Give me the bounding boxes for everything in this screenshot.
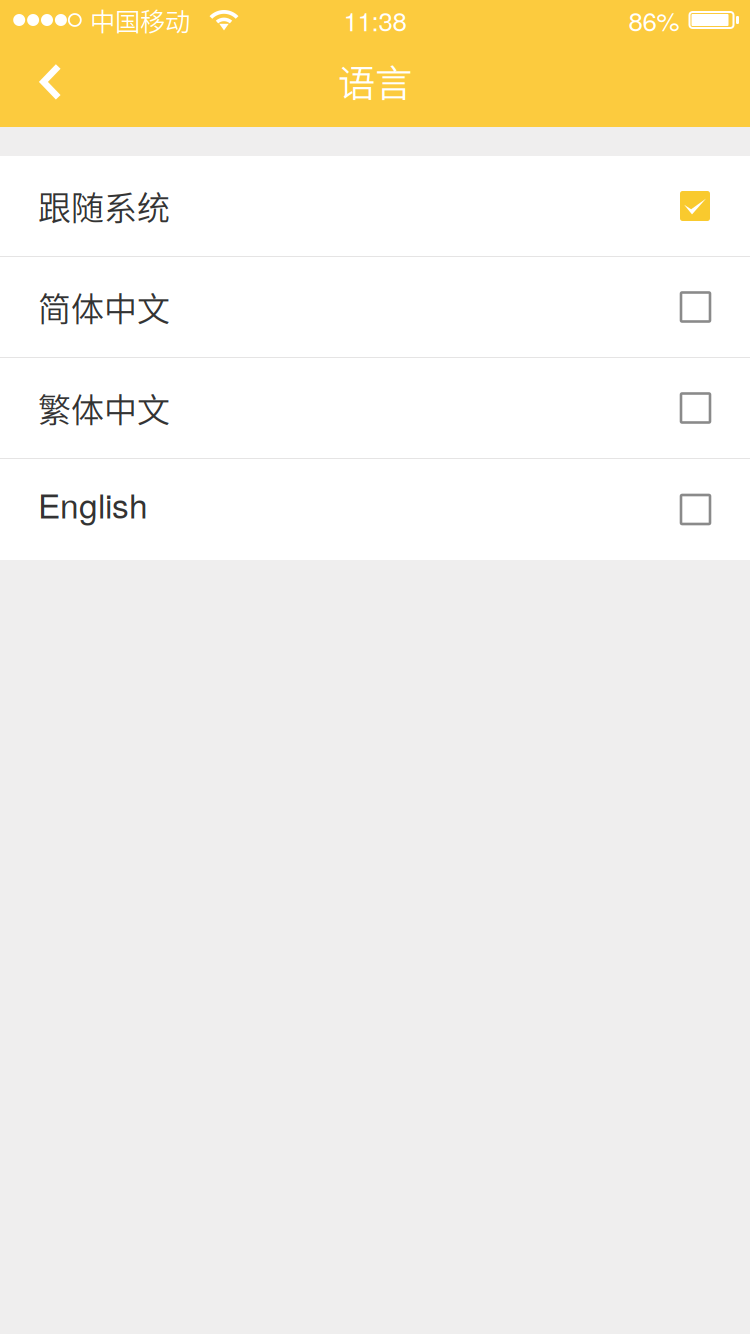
staticText: 11:38	[343, 1, 406, 39]
button[interactable]: 繁体中文	[0, 358, 750, 459]
staticText: 繁体中文	[38, 384, 170, 432]
staticText: 简体中文	[38, 283, 170, 331]
staticText: 中国移动	[90, 2, 190, 38]
button[interactable]: 跟随系统	[0, 156, 750, 257]
button[interactable]: English	[0, 459, 750, 560]
staticText: English	[38, 480, 148, 528]
staticText: 跟随系统	[38, 182, 170, 230]
button[interactable]: 简体中文	[0, 257, 750, 358]
staticText: 86%	[628, 1, 679, 39]
staticText: 语言	[338, 54, 412, 108]
button[interactable]: Back	[0, 40, 110, 127]
